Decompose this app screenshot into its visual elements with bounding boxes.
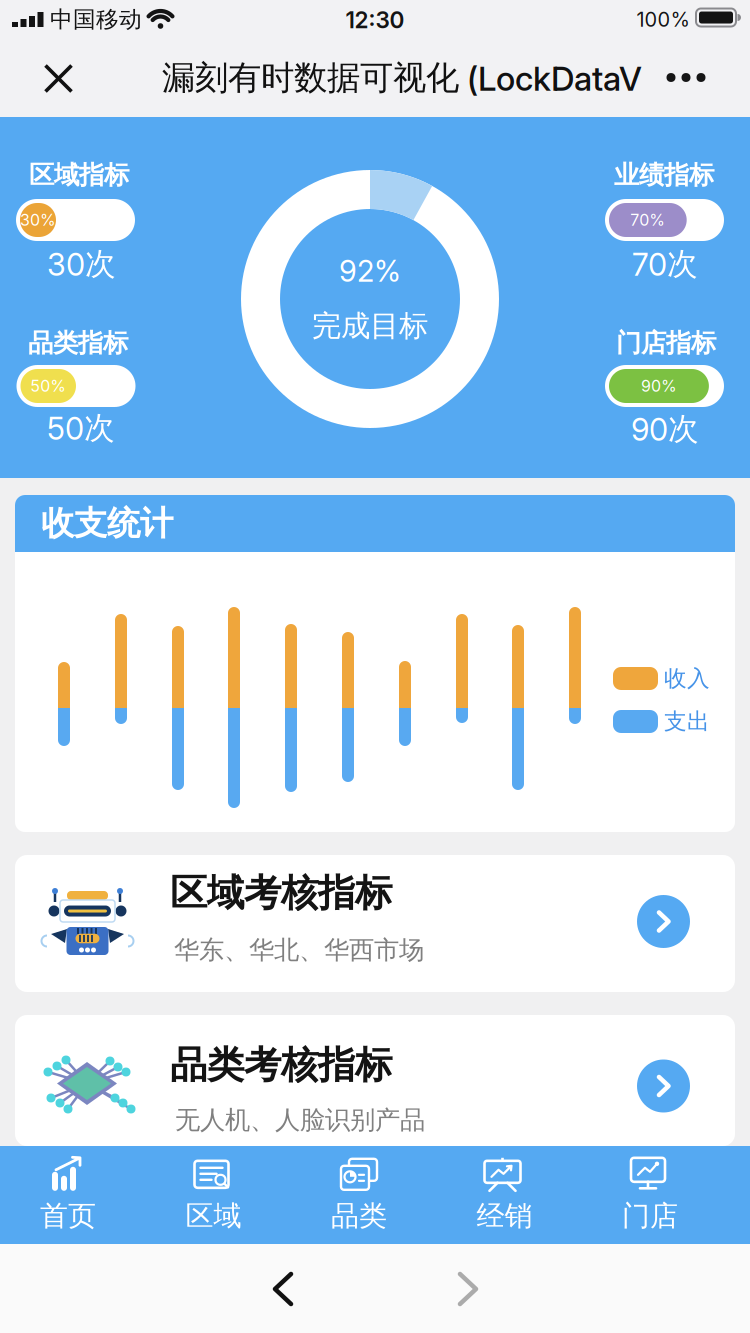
button[interactable]: 首页: [0, 1146, 138, 1244]
staticText: 50%: [30, 377, 66, 395]
button[interactable]: 品类考核指标: [15, 1015, 735, 1146]
staticText: 区域: [185, 1199, 241, 1233]
staticText: 90%: [641, 377, 677, 395]
button[interactable]: Back: [271, 1272, 295, 1306]
staticText: 无人机、人脸识别产品: [175, 1104, 425, 1135]
staticText: 30次: [47, 245, 116, 283]
staticText: 100%: [636, 8, 689, 31]
staticText: 中国移动: [50, 6, 142, 33]
staticText: 支出: [664, 708, 710, 735]
staticText: 92%: [339, 254, 401, 288]
staticText: 经销: [476, 1199, 532, 1233]
staticText: 品类: [331, 1199, 387, 1233]
staticText: 华东、华北、华西市场: [174, 934, 424, 965]
button[interactable]: 品类: [289, 1146, 429, 1244]
staticText: 收支统计: [41, 503, 173, 544]
staticText: 70次: [632, 245, 698, 283]
staticText: 品类考核指标: [170, 1042, 392, 1088]
staticText: 品类指标: [28, 327, 128, 358]
staticText: 区域指标: [29, 159, 129, 190]
staticText: 门店: [622, 1199, 678, 1233]
staticText: 首页: [40, 1199, 96, 1233]
button[interactable]: 门店: [580, 1146, 720, 1244]
staticText: 70%: [630, 211, 665, 229]
staticText: 完成目标: [312, 308, 428, 344]
button[interactable]: More: [658, 49, 714, 105]
button[interactable]: 经销: [434, 1146, 574, 1244]
staticText: 业绩指标: [614, 159, 714, 190]
staticText: 90次: [631, 410, 699, 448]
staticText: 30%: [20, 211, 56, 229]
staticText: 门店指标: [616, 327, 716, 358]
button[interactable]: Forward: [456, 1272, 480, 1306]
staticText: 12:30: [345, 7, 404, 33]
button[interactable]: 区域考核指标: [15, 855, 735, 992]
staticText: 漏刻有时数据可视化 (LockDataV: [162, 57, 642, 98]
button[interactable]: 区域: [143, 1146, 283, 1244]
staticText: 收入: [664, 665, 710, 692]
button[interactable]: Close: [30, 50, 86, 106]
staticText: 区域考核指标: [170, 870, 392, 916]
staticText: 50次: [47, 409, 115, 447]
